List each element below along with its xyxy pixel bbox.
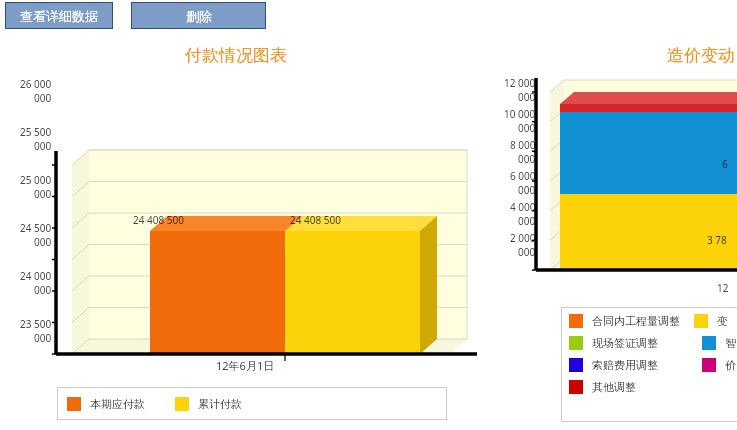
button[interactable]: 查看详细数据 <box>5 2 113 29</box>
staticText: 6 <box>722 157 728 171</box>
staticText: 000 <box>34 139 52 153</box>
staticText: 24 000 <box>20 269 52 283</box>
staticText: 变 <box>717 314 728 328</box>
staticText: 查看详细数据 <box>20 8 98 24</box>
staticText: 3 78 <box>707 233 727 247</box>
staticText: 000 <box>518 183 536 197</box>
staticText: 价 <box>725 358 736 372</box>
staticText: 23 500 <box>20 317 52 331</box>
staticText: 000 <box>518 245 536 259</box>
staticText: 24 500 <box>20 221 52 235</box>
button[interactable]: 本期应付款 <box>57 387 447 420</box>
staticText: 000 <box>518 214 536 228</box>
staticText: 合同内工程量调整 <box>592 314 680 328</box>
staticText: 6 000 <box>510 169 536 183</box>
staticText: 000 <box>518 152 536 166</box>
button[interactable]: 删除 <box>131 2 266 29</box>
staticText: 付款情况图表 <box>185 45 287 66</box>
staticText: 000 <box>34 91 52 105</box>
staticText: 累计付款 <box>198 397 242 411</box>
staticText: 12年6月1日 <box>216 358 275 373</box>
staticText: 24 408 500 <box>290 213 341 227</box>
staticText: 24 408 500 <box>133 213 184 227</box>
staticText: 8 000 <box>510 138 536 152</box>
staticText: 26 000 <box>20 77 52 91</box>
staticText: 10 000 <box>504 107 536 121</box>
staticText: 000 <box>34 187 52 201</box>
staticText: 25 000 <box>20 173 52 187</box>
staticText: 本期应付款 <box>90 397 145 411</box>
staticText: 索赔费用调整 <box>592 358 658 372</box>
staticText: 12 000 <box>504 76 536 90</box>
staticText: 000 <box>518 121 536 135</box>
button[interactable]: 合同内工程量调整 <box>561 307 737 422</box>
staticText: 2 000 <box>510 231 536 245</box>
staticText: 现场签证调整 <box>592 336 658 350</box>
staticText: 000 <box>34 235 52 249</box>
staticText: 删除 <box>186 8 212 24</box>
staticText: 4 000 <box>510 200 536 214</box>
staticText: 000 <box>518 90 536 104</box>
staticText: 25 500 <box>20 125 52 139</box>
staticText: 12 <box>717 281 729 295</box>
staticText: 000 <box>34 283 52 297</box>
staticText: 造价变动 <box>667 45 735 66</box>
staticText: 000 <box>34 331 52 345</box>
staticText: 智 <box>725 336 736 350</box>
staticText: 其他调整 <box>592 380 636 394</box>
